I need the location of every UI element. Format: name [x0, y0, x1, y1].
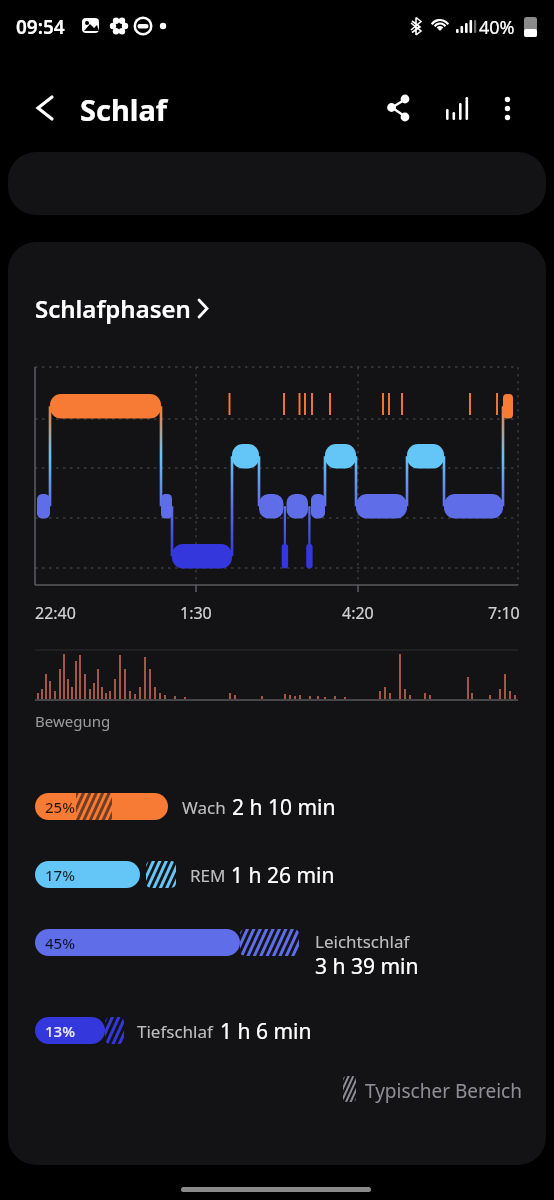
staticText: 13% — [45, 1021, 75, 1041]
staticText: Tiefschlaf — [137, 1020, 213, 1043]
button[interactable] — [487, 85, 529, 130]
staticText: Schlafphasen — [35, 292, 191, 325]
staticText: REM — [190, 864, 226, 887]
staticText: 3 h 39 min — [315, 952, 419, 981]
staticText: Typischer Bereich — [365, 1078, 522, 1104]
staticText: 09:54 — [16, 14, 65, 40]
staticText: 45% — [45, 933, 75, 953]
button[interactable] — [25, 85, 70, 130]
staticText: 2 h 10 min — [232, 793, 336, 822]
button[interactable] — [378, 85, 423, 130]
staticText: 17% — [45, 865, 75, 885]
staticText: 22:40 — [35, 602, 76, 624]
staticText: Leichtschlaf — [315, 930, 410, 953]
staticText: 7:10 — [488, 602, 520, 624]
staticText: 1 h 6 min — [220, 1017, 312, 1046]
button[interactable] — [35, 292, 215, 326]
staticText: 25% — [45, 797, 75, 817]
staticText: 40% — [479, 15, 515, 40]
button[interactable] — [433, 85, 478, 130]
staticText: 1:30 — [180, 602, 212, 624]
staticText: Schlaf — [80, 90, 168, 129]
staticText: 4:20 — [342, 602, 374, 624]
staticText: Wach — [182, 796, 226, 819]
staticText: Bewegung — [35, 711, 111, 731]
staticText: 1 h 26 min — [231, 861, 335, 890]
